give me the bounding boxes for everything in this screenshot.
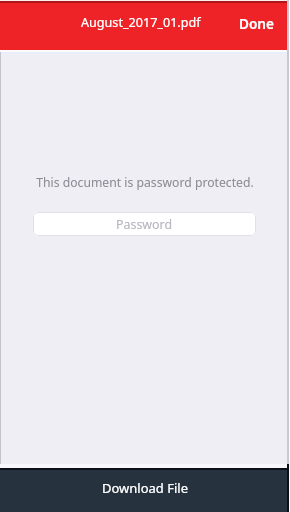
- staticText: Password: [116, 216, 173, 233]
- staticText: Done: [239, 14, 274, 33]
- staticText: Download File: [102, 479, 189, 497]
- staticText: August_2017_01.pdf: [81, 14, 201, 31]
- button[interactable]: Download File: [0, 470, 290, 512]
- button[interactable]: Done: [223, 2, 290, 45]
- staticText: This document is password protected.: [36, 174, 254, 191]
- button[interactable]: Password: [33, 212, 256, 236]
